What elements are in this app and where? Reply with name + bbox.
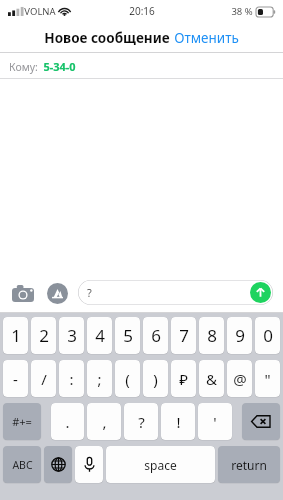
staticText: 38 % <box>231 5 253 18</box>
staticText: 7 <box>179 324 189 347</box>
button[interactable]: ₽ <box>171 360 196 397</box>
button[interactable]: 2 <box>31 317 56 354</box>
button[interactable]: #+= <box>3 403 41 440</box>
staticText: 5-34-0 <box>43 59 76 74</box>
staticText: Новое сообщение <box>44 29 170 47</box>
button[interactable]: 1 <box>3 317 28 354</box>
staticText: ; <box>97 369 102 389</box>
button[interactable]: App Store <box>44 280 70 306</box>
button[interactable]: 8 <box>199 317 224 354</box>
button[interactable]: Dictation <box>75 446 103 483</box>
button[interactable]: ' <box>198 403 232 440</box>
button[interactable]: 5 <box>115 317 140 354</box>
button[interactable]: ? <box>124 403 158 440</box>
button[interactable]: ( <box>115 360 140 397</box>
button[interactable]: return <box>218 446 280 483</box>
staticText: 8 <box>207 324 217 347</box>
staticText: ? <box>87 285 92 300</box>
staticText: ' <box>213 412 217 432</box>
staticText: VOLNA <box>24 5 56 18</box>
button[interactable]: Change keyboard <box>44 446 72 483</box>
button[interactable]: , <box>87 403 121 440</box>
staticText: / <box>41 369 47 389</box>
staticText: ) <box>153 369 158 389</box>
button[interactable]: / <box>31 360 56 397</box>
staticText: Кому: <box>9 60 38 74</box>
staticText: . <box>65 412 70 432</box>
staticText: 4 <box>95 324 105 347</box>
staticText: 9 <box>235 324 245 347</box>
staticText: space <box>144 457 177 473</box>
button[interactable]: 3 <box>59 317 84 354</box>
button[interactable]: - <box>3 360 28 397</box>
staticText: @ <box>233 369 247 389</box>
button[interactable]: 9 <box>227 317 252 354</box>
button[interactable]: @ <box>227 360 252 397</box>
button[interactable]: Отменить <box>174 29 239 47</box>
button[interactable]: ! <box>161 403 195 440</box>
staticText: ! <box>176 412 181 432</box>
staticText: #+= <box>12 414 32 429</box>
staticText: ₽ <box>179 369 188 389</box>
staticText: Отменить <box>174 29 239 47</box>
staticText: ( <box>125 369 130 389</box>
button[interactable]: ) <box>143 360 168 397</box>
staticText: " <box>264 369 271 389</box>
button[interactable]: 6 <box>143 317 168 354</box>
button[interactable]: 7 <box>171 317 196 354</box>
staticText: 0 <box>263 324 273 347</box>
staticText: return <box>231 457 267 473</box>
button[interactable]: ? <box>78 280 273 305</box>
button[interactable]: : <box>59 360 84 397</box>
staticText: 1 <box>11 324 21 347</box>
staticText: , <box>102 412 107 432</box>
button[interactable]: Send <box>250 282 271 303</box>
button[interactable]: Кому: <box>0 53 283 79</box>
button[interactable]: 0 <box>255 317 280 354</box>
button[interactable]: ; <box>87 360 112 397</box>
button[interactable]: Backspace <box>242 403 280 440</box>
button[interactable]: space <box>106 446 215 483</box>
staticText: 5 <box>123 324 133 347</box>
button[interactable]: Camera <box>10 280 36 306</box>
button[interactable]: & <box>199 360 224 397</box>
staticText: : <box>69 369 74 389</box>
button[interactable]: . <box>51 403 84 440</box>
staticText: 20:16 <box>129 4 155 18</box>
staticText: ABC <box>12 458 33 472</box>
staticText: ? <box>138 412 145 432</box>
staticText: - <box>13 369 18 389</box>
staticText: 2 <box>39 324 49 347</box>
button[interactable]: ABC <box>3 446 41 483</box>
button[interactable]: 4 <box>87 317 112 354</box>
staticText: 3 <box>67 324 77 347</box>
staticText: 6 <box>151 324 161 347</box>
button[interactable]: " <box>255 360 280 397</box>
staticText: & <box>206 369 217 389</box>
